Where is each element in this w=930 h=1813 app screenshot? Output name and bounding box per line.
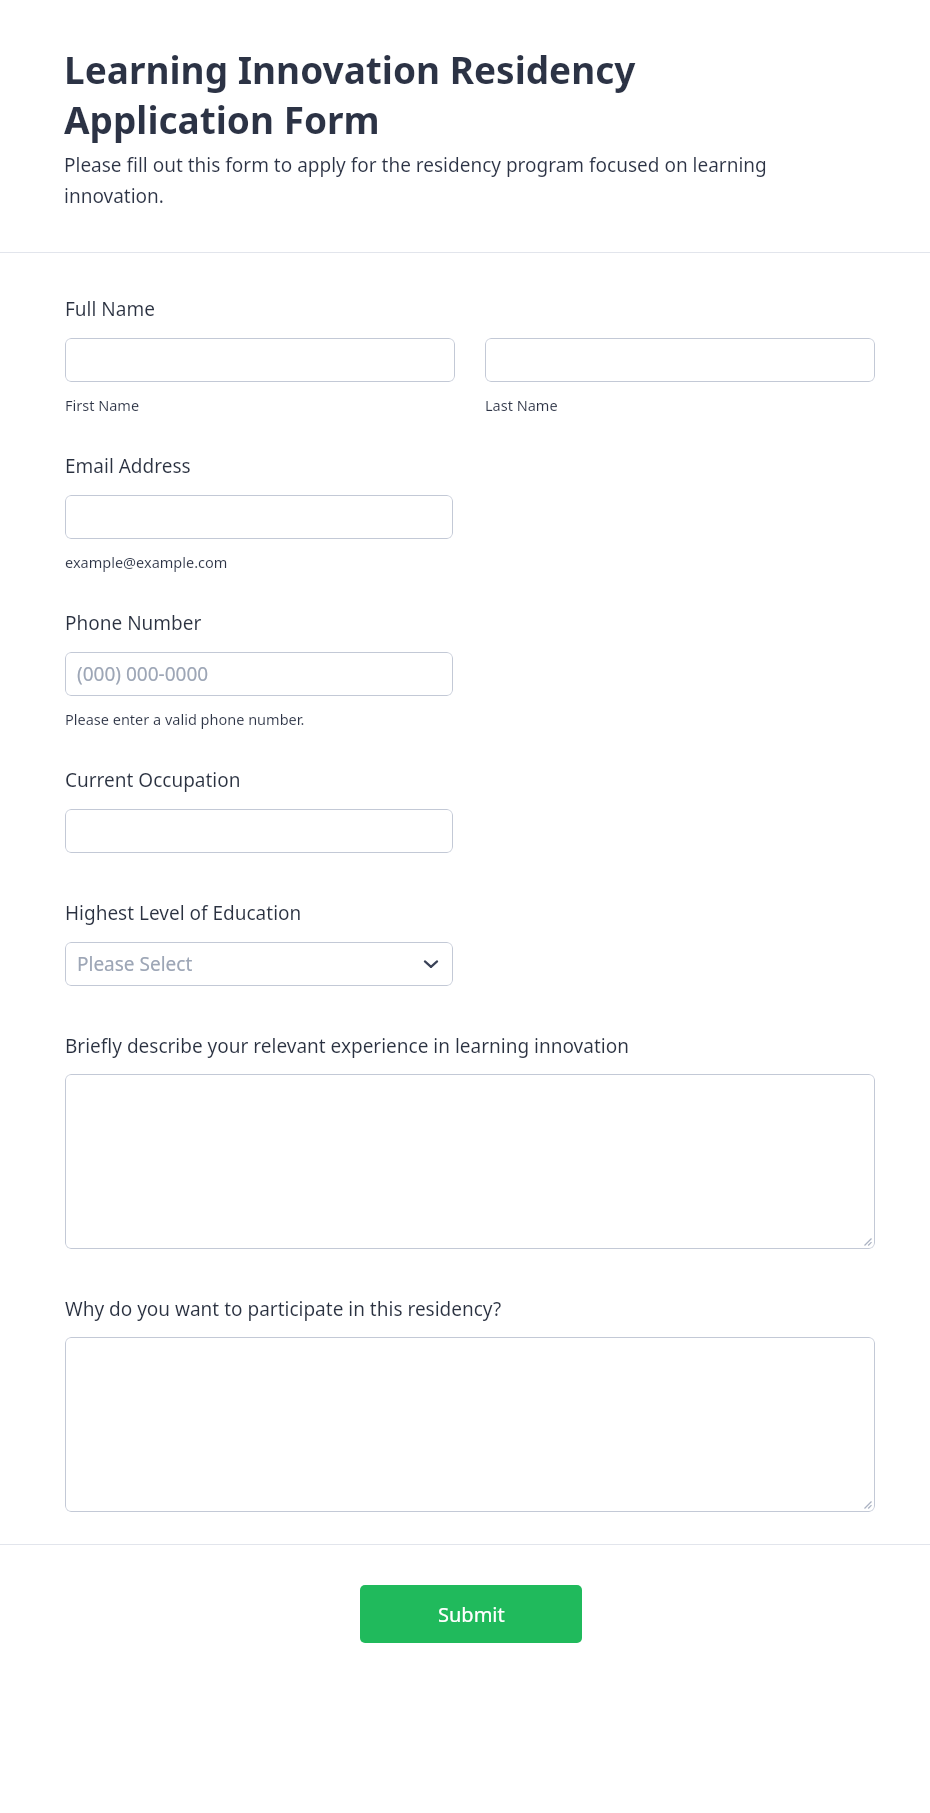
button[interactable]: [65, 809, 453, 853]
button[interactable]: Please Select: [65, 942, 453, 986]
button[interactable]: [65, 338, 455, 382]
staticText: Current Occupation: [65, 767, 241, 793]
staticText: (000) 000-0000: [77, 661, 209, 687]
staticText: Full Name: [65, 296, 155, 322]
staticText: Why do you want to participate in this r…: [65, 1296, 502, 1322]
staticText: Submit: [438, 1601, 505, 1628]
button[interactable]: [485, 338, 875, 382]
button[interactable]: [65, 1074, 875, 1249]
staticText: example@example.com: [65, 552, 228, 572]
button[interactable]: [65, 495, 453, 539]
button[interactable]: Submit: [360, 1585, 582, 1643]
staticText: Please fill out this form to apply for t…: [64, 152, 767, 208]
staticText: Phone Number: [65, 610, 202, 636]
other: Open dropdown: [423, 956, 439, 972]
staticText: Last Name: [485, 395, 558, 415]
staticText: First Name: [65, 395, 140, 415]
staticText: Email Address: [65, 453, 191, 479]
staticText: Please Select: [77, 951, 193, 977]
button[interactable]: [65, 1337, 875, 1512]
staticText: Please enter a valid phone number.: [65, 709, 305, 729]
staticText: Highest Level of Education: [65, 900, 302, 926]
staticText: Application Form: [64, 94, 380, 144]
staticText: Learning Innovation Residency: [64, 44, 636, 94]
staticText: Briefly describe your relevant experienc…: [65, 1033, 629, 1059]
button[interactable]: (000) 000-0000: [65, 652, 453, 696]
